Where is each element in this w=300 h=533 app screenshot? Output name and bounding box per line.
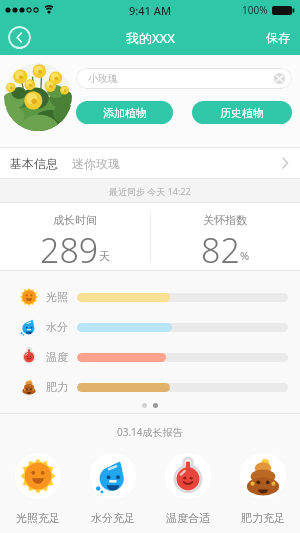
staticText: 100% — [242, 3, 268, 17]
staticText: 光照 — [46, 290, 71, 304]
staticText: 光照充足 — [16, 511, 60, 525]
button[interactable]: 水分充足 — [75, 453, 150, 525]
staticText: 水分 — [46, 320, 71, 334]
staticText: 我的XXX — [126, 29, 175, 47]
staticText: 9:41 AM — [129, 3, 172, 18]
staticText: 肥力 — [46, 380, 71, 394]
staticText: 最近同步 今天 14:22 — [109, 185, 191, 197]
staticText: 82 — [201, 227, 240, 270]
button[interactable]: 历史植物 — [192, 101, 292, 124]
staticText: % — [240, 248, 250, 263]
button[interactable]: 肥力充足 — [225, 453, 300, 525]
button[interactable]: 温度合适 — [150, 453, 225, 525]
staticText: 小玫瑰 — [88, 72, 118, 85]
staticText: 肥力充足 — [241, 511, 285, 525]
staticText: 历史植物 — [220, 106, 264, 120]
staticText: 保存 — [266, 30, 290, 45]
button[interactable]: 添加植物 — [76, 101, 173, 124]
staticText: 289 — [40, 227, 99, 270]
button[interactable]: 基本信息 — [0, 148, 300, 178]
staticText: 添加植物 — [103, 106, 147, 120]
staticText: 温度 — [46, 350, 71, 364]
button[interactable]: 小玫瑰 — [76, 68, 292, 89]
button[interactable] — [8, 26, 31, 49]
staticText: 温度合适 — [166, 511, 210, 525]
staticText: 基本信息 — [10, 156, 58, 171]
staticText: 天 — [99, 249, 110, 263]
staticText: 03.14成长报告 — [117, 425, 183, 439]
staticText: 水分充足 — [91, 511, 135, 525]
button[interactable]: 光照充足 — [0, 453, 75, 525]
staticText: 迷你玫瑰 — [72, 156, 120, 171]
button[interactable]: 保存 — [266, 30, 300, 45]
staticText: 成长时间 — [53, 213, 97, 227]
staticText: 关怀指数 — [203, 213, 247, 227]
